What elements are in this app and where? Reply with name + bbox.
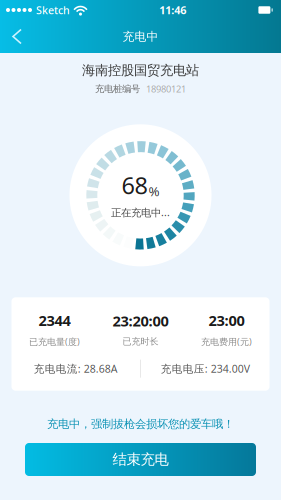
staticText: 18980121 [146, 83, 186, 95]
button[interactable]: 结束充电 [25, 443, 256, 476]
staticText: 11:46 [159, 3, 186, 17]
staticText: 68 [121, 169, 147, 201]
staticText: 充电电流: 28.68A [34, 361, 118, 376]
button[interactable]: Back [0, 20, 34, 53]
staticText: 充电电压: 234.00V [161, 361, 250, 376]
staticText: 充电中，强制拔枪会损坏您的爱车哦！ [47, 417, 234, 431]
staticText: 正在充电中... [111, 205, 170, 219]
staticText: Sketch [36, 3, 70, 17]
staticText: 充电桩编号 [95, 83, 140, 95]
staticText: 23:20:00 [112, 311, 168, 331]
staticText: 23:00 [208, 310, 244, 330]
staticText: 2344 [38, 310, 70, 330]
staticText: 已充电量(度) [29, 335, 80, 348]
staticText: 充电费用(元) [201, 335, 252, 348]
staticText: % [148, 182, 159, 200]
staticText: 已充时长 [122, 336, 158, 347]
staticText: 海南控股国贸充电站 [82, 62, 199, 79]
staticText: 结束充电 [112, 450, 168, 468]
staticText: 充电中 [122, 29, 158, 44]
